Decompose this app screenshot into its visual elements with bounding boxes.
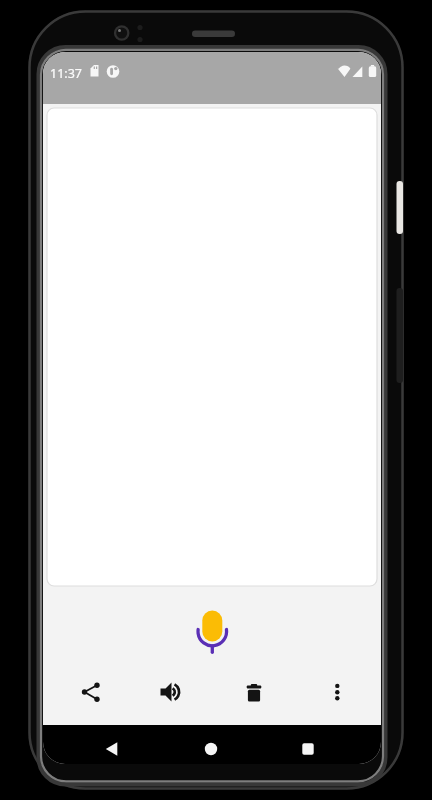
staticText: 11:37 bbox=[50, 65, 82, 82]
button[interactable] bbox=[320, 675, 354, 709]
button[interactable] bbox=[195, 734, 227, 764]
button[interactable] bbox=[292, 734, 324, 764]
button[interactable] bbox=[237, 675, 271, 709]
button[interactable] bbox=[70, 675, 104, 709]
button[interactable] bbox=[153, 675, 187, 709]
button[interactable] bbox=[96, 734, 128, 764]
button[interactable] bbox=[186, 604, 238, 660]
